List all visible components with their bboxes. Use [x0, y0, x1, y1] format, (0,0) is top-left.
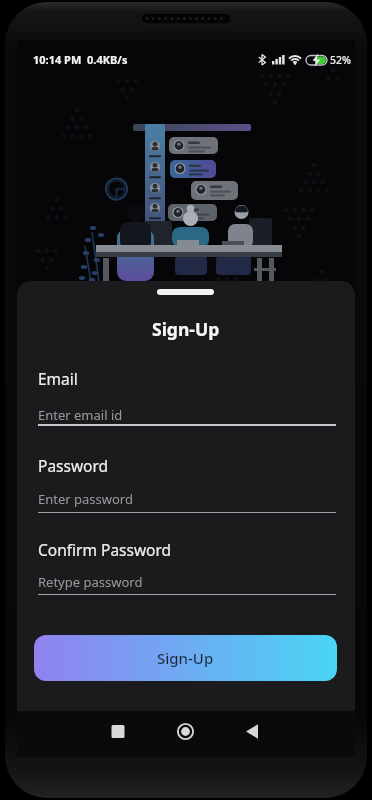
staticText: 10:14 PM 0.4KB/s	[33, 52, 128, 67]
staticText: Enter email id	[38, 406, 123, 424]
staticText: Enter password	[38, 490, 133, 508]
button[interactable]	[229, 711, 277, 757]
staticText: Retype password	[38, 573, 143, 591]
button[interactable]	[94, 711, 142, 757]
button[interactable]: Enter email id	[38, 399, 336, 426]
staticText: 52%	[330, 53, 351, 67]
button[interactable]	[162, 711, 210, 757]
staticText: Sign-Up	[157, 648, 214, 668]
staticText: Confirm Password	[38, 539, 172, 560]
staticText: Sign-Up	[152, 317, 220, 341]
button[interactable]: Sign-Up	[34, 635, 337, 681]
staticText: Password	[38, 455, 109, 476]
button[interactable]: Enter password	[38, 485, 336, 512]
staticText: Email	[38, 368, 78, 389]
button[interactable]: Retype password	[38, 568, 336, 595]
